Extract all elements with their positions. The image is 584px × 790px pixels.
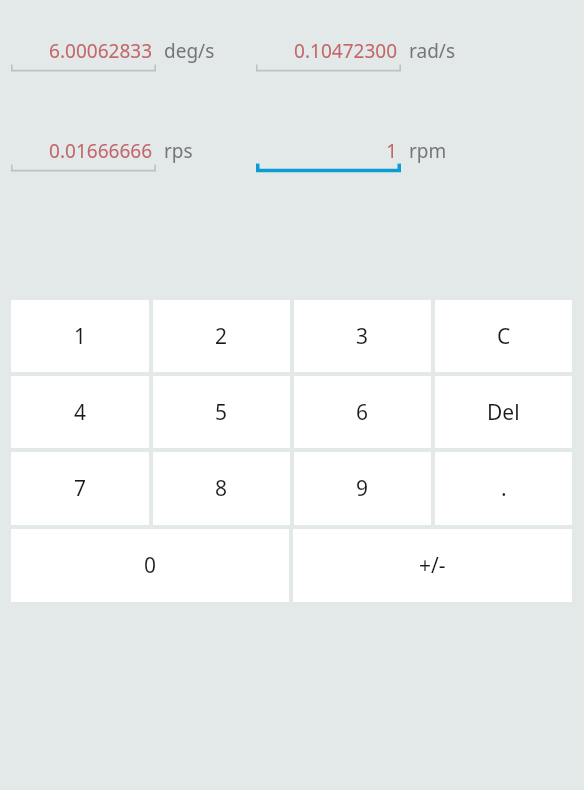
button[interactable]: 6	[294, 376, 431, 448]
staticText: 7	[74, 474, 87, 503]
staticText: 0.01666666	[11, 138, 152, 164]
staticText: .	[501, 474, 507, 503]
button[interactable]: Del	[435, 376, 572, 448]
button[interactable]: 4	[11, 376, 149, 448]
staticText: 6.00062833	[11, 38, 152, 64]
staticText: 1	[256, 138, 397, 164]
staticText: 1	[74, 322, 87, 351]
staticText: C	[497, 322, 511, 351]
staticText: 9	[356, 474, 369, 503]
staticText: rps	[164, 138, 193, 164]
button[interactable]: 6.00062833	[11, 38, 156, 64]
staticText: +/-	[419, 551, 446, 580]
staticText: 8	[215, 474, 228, 503]
staticText: 4	[74, 398, 87, 427]
button[interactable]: 9	[294, 452, 431, 525]
staticText: rpm	[409, 138, 447, 164]
button[interactable]: 1	[256, 138, 401, 164]
staticText: rad/s	[409, 38, 455, 64]
button[interactable]: 5	[153, 376, 290, 448]
button[interactable]: 8	[153, 452, 290, 525]
staticText: 6	[356, 398, 369, 427]
button[interactable]: 0.01666666	[11, 138, 156, 164]
staticText: 0	[144, 551, 157, 580]
button[interactable]: 0	[11, 529, 289, 602]
staticText: 5	[215, 398, 228, 427]
button[interactable]: 0.10472300	[256, 38, 401, 64]
button[interactable]: .	[435, 452, 572, 525]
staticText: 0.10472300	[256, 38, 397, 64]
staticText: 3	[356, 322, 369, 351]
staticText: 2	[215, 322, 228, 351]
button[interactable]: 3	[294, 300, 431, 372]
button[interactable]: 2	[153, 300, 290, 372]
button[interactable]: C	[435, 300, 572, 372]
button[interactable]: 7	[11, 452, 149, 525]
staticText: Del	[487, 398, 520, 427]
button[interactable]: 1	[11, 300, 149, 372]
staticText: deg/s	[164, 38, 215, 64]
button[interactable]: +/-	[293, 529, 572, 602]
